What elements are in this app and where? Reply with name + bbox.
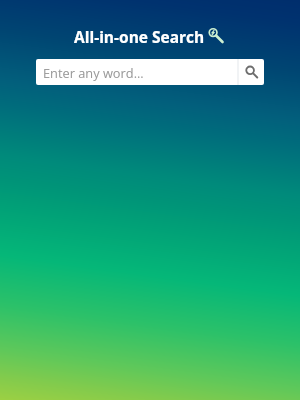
staticText: Enter any word... [43, 64, 144, 81]
button[interactable]: Search [239, 59, 264, 85]
button[interactable]: Enter any word... [36, 59, 237, 85]
staticText: All-in-one Search [74, 26, 205, 47]
